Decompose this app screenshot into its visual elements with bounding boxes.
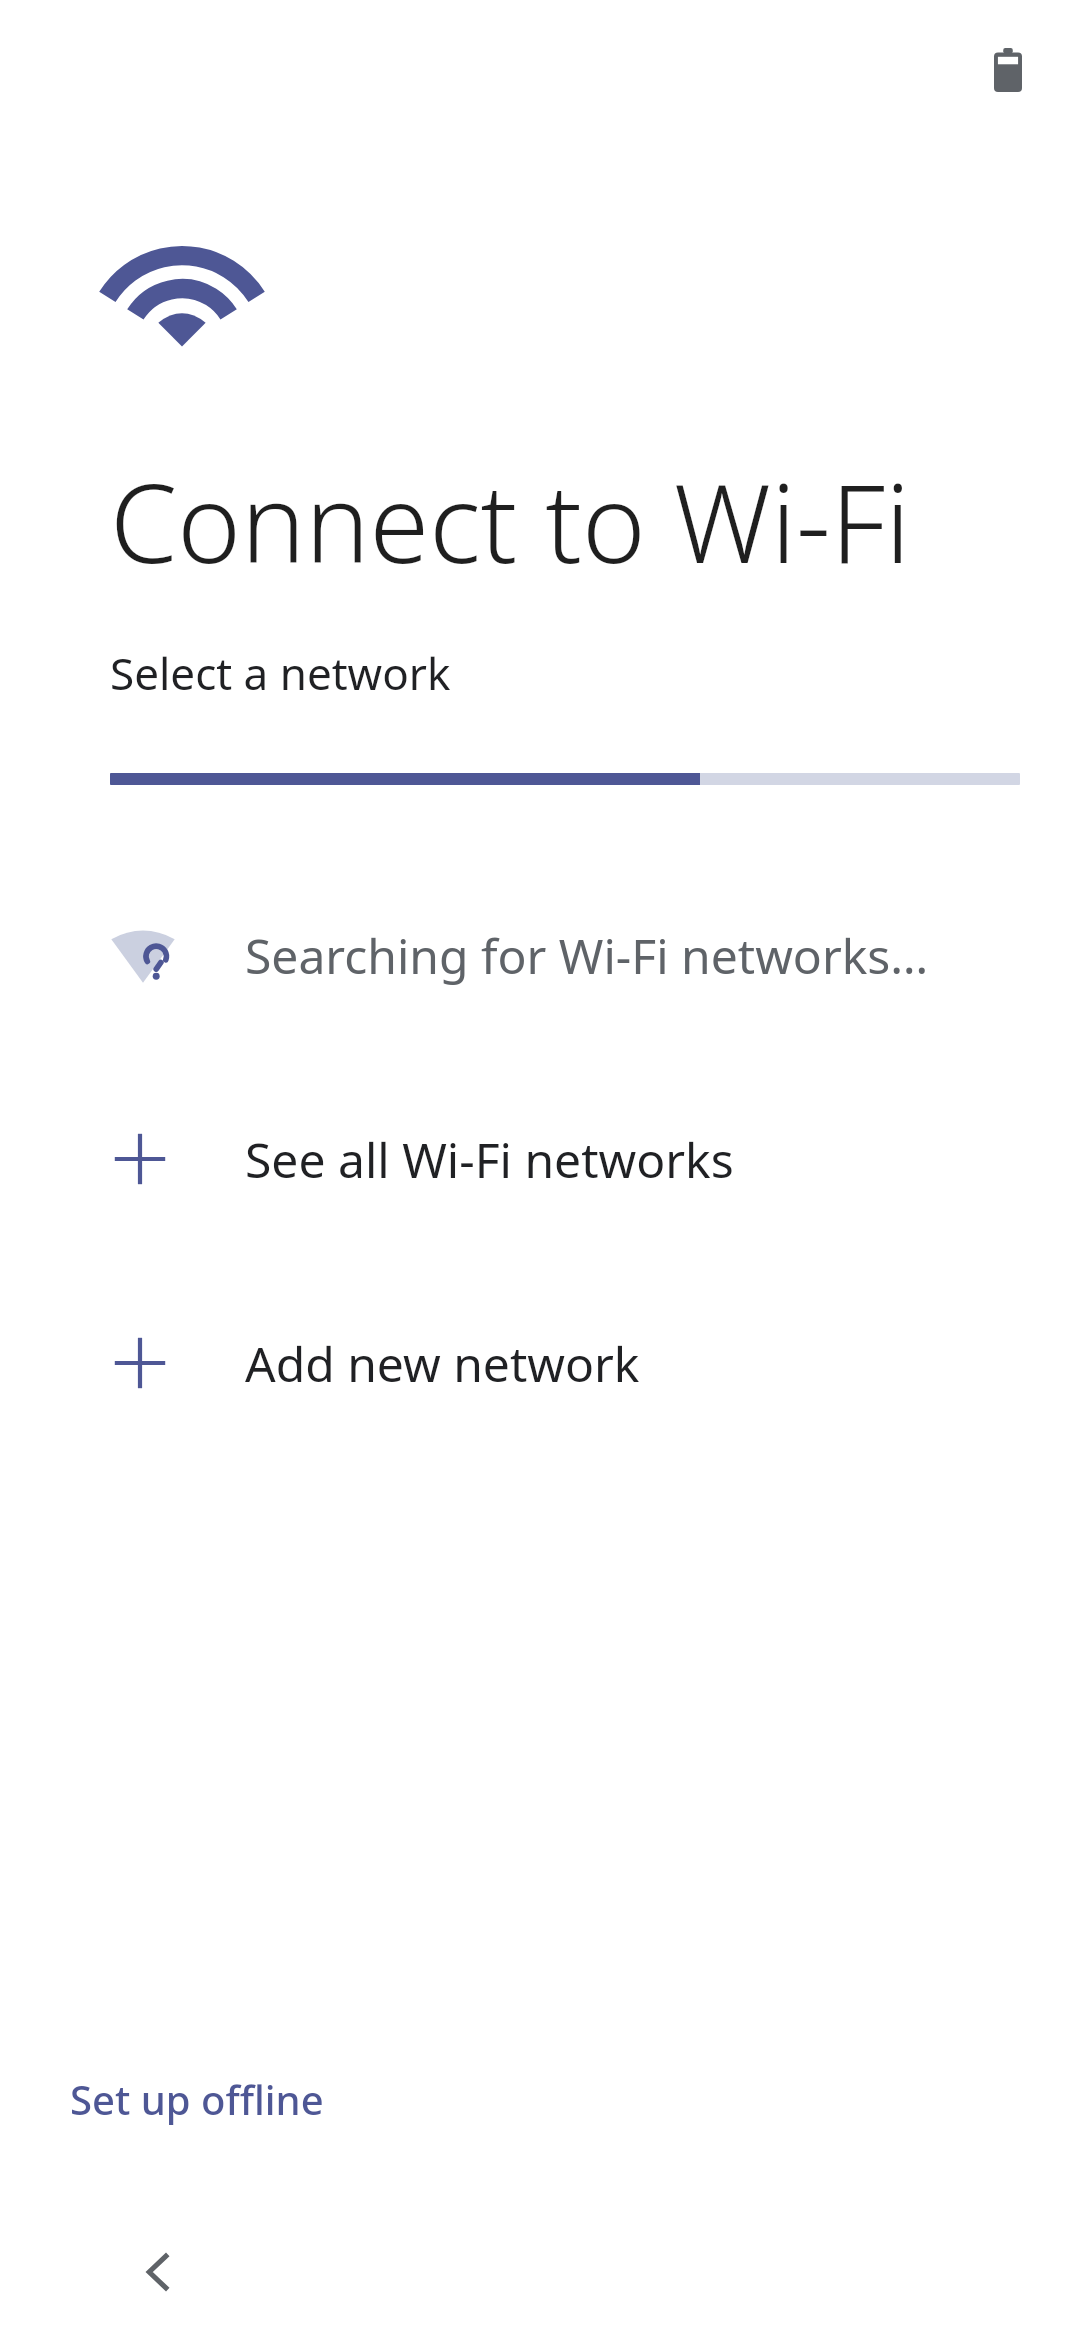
button[interactable]: Back bbox=[110, 2224, 206, 2320]
staticText: Set up offline bbox=[70, 2072, 324, 2126]
staticText: Connect to Wi-Fi bbox=[110, 448, 911, 595]
staticText: Searching for Wi-Fi networks… bbox=[245, 923, 929, 988]
button[interactable]: Add new network bbox=[110, 1311, 1080, 1415]
button[interactable]: Set up offline bbox=[40, 2054, 354, 2144]
staticText: See all Wi-Fi networks bbox=[245, 1127, 734, 1192]
button[interactable]: Searching for Wi-Fi networks… bbox=[110, 903, 1080, 1007]
button[interactable]: See all Wi-Fi networks bbox=[110, 1107, 1080, 1211]
other: Battery bbox=[994, 48, 1022, 92]
staticText: Select a network bbox=[110, 643, 451, 703]
staticText: Add new network bbox=[245, 1331, 640, 1396]
